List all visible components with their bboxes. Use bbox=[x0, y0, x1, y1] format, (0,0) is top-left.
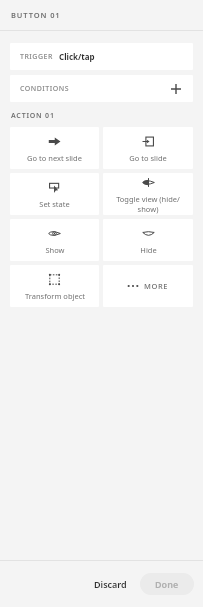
staticText: Transform object bbox=[25, 291, 85, 301]
button[interactable]: Set state bbox=[10, 173, 99, 215]
button[interactable]: MORE bbox=[103, 265, 193, 307]
button[interactable]: Go to next slide bbox=[10, 127, 99, 169]
staticText: Show bbox=[45, 245, 65, 255]
staticText: Toggle view (hide/show) bbox=[106, 194, 190, 214]
button[interactable]: Show bbox=[10, 219, 99, 261]
staticText: Set state bbox=[39, 199, 70, 209]
staticText: ACTION 01 bbox=[11, 111, 55, 121]
staticText: BUTTON 01 bbox=[11, 10, 61, 20]
staticText: Go to slide bbox=[129, 153, 167, 163]
button[interactable]: Toggle view (hide/show) bbox=[103, 173, 193, 215]
button[interactable]: TRIGGER bbox=[10, 43, 193, 70]
staticText: CONDITIONS bbox=[20, 84, 70, 94]
staticText: Hide bbox=[140, 245, 157, 255]
button[interactable]: Discard bbox=[85, 572, 136, 596]
button[interactable]: CONDITIONS bbox=[10, 75, 193, 102]
button[interactable]: Done bbox=[140, 573, 194, 595]
staticText: Discard bbox=[94, 578, 127, 590]
button[interactable]: Hide bbox=[103, 219, 193, 261]
staticText: Click/tap bbox=[59, 51, 95, 62]
staticText: Done bbox=[155, 578, 179, 590]
staticText: MORE bbox=[144, 281, 169, 291]
button[interactable]: Go to slide bbox=[103, 127, 193, 169]
staticText: Go to next slide bbox=[27, 153, 82, 163]
button[interactable]: Add condition bbox=[169, 82, 183, 96]
staticText: TRIGGER bbox=[20, 52, 53, 62]
button[interactable]: Transform object bbox=[10, 265, 99, 307]
